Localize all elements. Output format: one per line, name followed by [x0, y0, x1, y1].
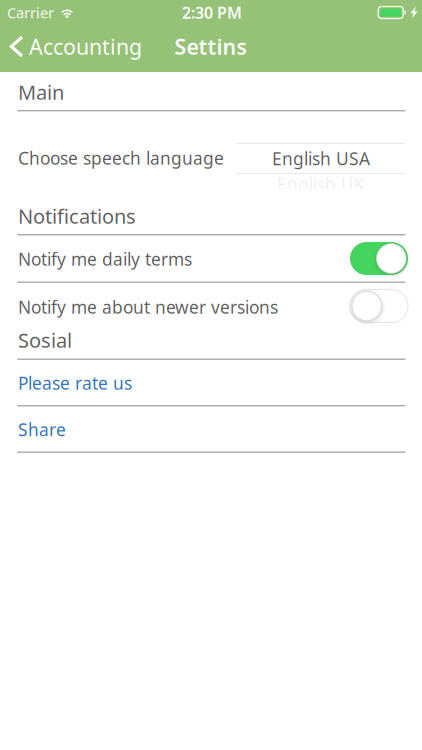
staticText: Please rate us [18, 371, 132, 394]
staticText: Main [18, 79, 64, 105]
button[interactable]: Accounting [0, 24, 170, 68]
staticText: English UK [277, 172, 365, 195]
button[interactable]: Notify me about newer versions [346, 283, 412, 329]
staticText: Accounting [29, 32, 142, 61]
staticText: Sosial [18, 327, 72, 353]
staticText: Choose speech language [18, 146, 224, 169]
button[interactable]: Share [0, 406, 422, 452]
button[interactable]: Notify me daily terms [346, 235, 412, 281]
staticText: Share [18, 418, 66, 441]
staticText: Notifications [18, 203, 136, 229]
button[interactable]: Speech language: English USA [236, 134, 405, 206]
staticText: Notify me daily terms [18, 247, 192, 270]
staticText: Carrier [7, 3, 54, 22]
staticText: Notify me about newer versions [18, 295, 278, 318]
staticText: English USA [272, 147, 370, 170]
button[interactable]: Please rate us [0, 360, 422, 406]
staticText: Settins [174, 32, 247, 61]
staticText: 2:30 PM [182, 2, 242, 23]
